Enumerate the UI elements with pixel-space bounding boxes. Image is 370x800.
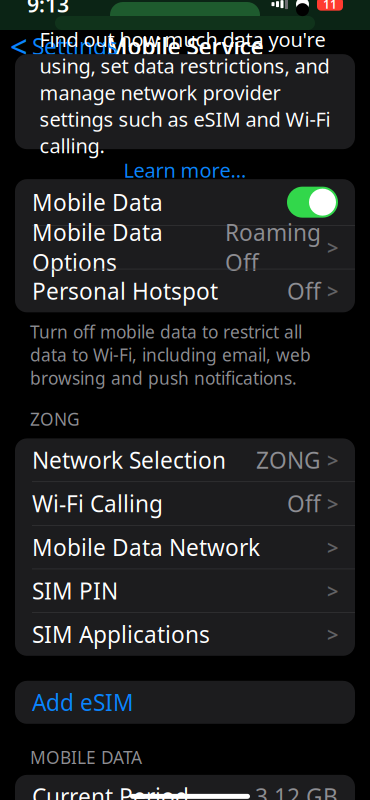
button[interactable]: Mobile Data Options xyxy=(15,226,355,269)
staticText: 3.12 GB xyxy=(255,781,338,800)
staticText: Mobile Service xyxy=(106,31,263,61)
staticText: > xyxy=(327,534,338,560)
button[interactable]: Mobile Data xyxy=(15,179,355,225)
staticText: Mobile Data xyxy=(32,187,163,217)
staticText: Off xyxy=(287,276,321,306)
button[interactable]: Wi-Fi Calling xyxy=(15,482,355,525)
staticText: SIM Applications xyxy=(32,619,210,649)
staticText: > xyxy=(327,278,338,304)
staticText: SIM PIN xyxy=(32,576,118,606)
staticText: MOBILE DATA xyxy=(30,746,142,769)
staticText: Off xyxy=(287,488,321,519)
button[interactable]: Add eSIM xyxy=(15,681,355,724)
staticText: > xyxy=(327,490,338,517)
staticText: Personal Hotspot xyxy=(32,276,218,306)
button[interactable]: Mobile Data Network xyxy=(15,526,355,569)
staticText: > xyxy=(327,234,338,261)
staticText: Mobile Data Network xyxy=(32,532,260,562)
staticText: Find out how much data you're using, set… xyxy=(39,26,330,159)
staticText: Roaming Off xyxy=(225,217,321,277)
button[interactable]: Learn more… xyxy=(123,157,246,183)
staticText: Wi-Fi Calling xyxy=(32,488,163,519)
staticText: Learn more… xyxy=(123,157,246,183)
staticText: Network Selection xyxy=(32,445,226,475)
staticText: ZONG xyxy=(30,407,80,430)
button[interactable]: Network Selection xyxy=(15,438,355,481)
staticText: < xyxy=(10,26,28,66)
button[interactable]: SIM PIN xyxy=(15,569,355,612)
staticText: Mobile Data Options xyxy=(32,217,163,277)
staticText: Current Period xyxy=(32,781,189,800)
staticText: Settings xyxy=(32,31,118,61)
button[interactable]: Personal Hotspot xyxy=(15,269,355,312)
staticText: 11 xyxy=(323,0,337,12)
staticText: Add eSIM xyxy=(32,687,134,717)
staticText: 9:13 xyxy=(27,0,69,18)
button[interactable]: < xyxy=(0,26,128,66)
staticText: > xyxy=(327,447,338,473)
staticText: > xyxy=(327,577,338,604)
staticText: ZONG xyxy=(256,445,321,475)
button[interactable]: SIM Applications xyxy=(15,613,355,656)
staticText: > xyxy=(327,621,338,648)
staticText: Turn off mobile data to restrict all dat… xyxy=(30,320,311,389)
